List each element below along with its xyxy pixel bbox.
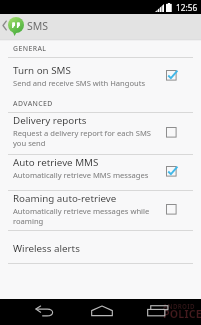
staticText: Turn on SMS bbox=[13, 64, 71, 77]
button[interactable] bbox=[0, 154, 201, 190]
staticText: GENERAL bbox=[13, 44, 47, 53]
button[interactable] bbox=[0, 230, 201, 263]
staticText: SMS bbox=[27, 19, 49, 33]
staticText: Auto retrieve MMS bbox=[13, 156, 99, 169]
button[interactable]: Recent apps bbox=[138, 299, 178, 325]
staticText: Delivery reports bbox=[13, 114, 87, 127]
button[interactable]: Home bbox=[82, 299, 122, 325]
staticText: ADVANCED bbox=[13, 99, 53, 108]
staticText: Wireless alerts bbox=[13, 242, 80, 255]
staticText: Send and receive SMS with Hangouts bbox=[13, 78, 146, 88]
button[interactable]: Navigate up bbox=[0, 14, 52, 39]
button[interactable] bbox=[0, 57, 201, 92]
staticText: Request a delivery report for each SMS y… bbox=[13, 128, 165, 148]
button[interactable] bbox=[0, 190, 201, 230]
staticText: POLICE bbox=[163, 307, 201, 321]
staticText: Roaming auto-retrieve bbox=[13, 192, 117, 205]
button[interactable]: Back bbox=[25, 299, 65, 325]
staticText: Automatically retrieve MMS messages bbox=[13, 170, 149, 180]
staticText: 12:56 bbox=[176, 2, 198, 13]
button[interactable] bbox=[0, 112, 201, 154]
staticText: ANDROID bbox=[163, 302, 195, 310]
staticText: Automatically retrieve messages while ro… bbox=[13, 206, 165, 226]
